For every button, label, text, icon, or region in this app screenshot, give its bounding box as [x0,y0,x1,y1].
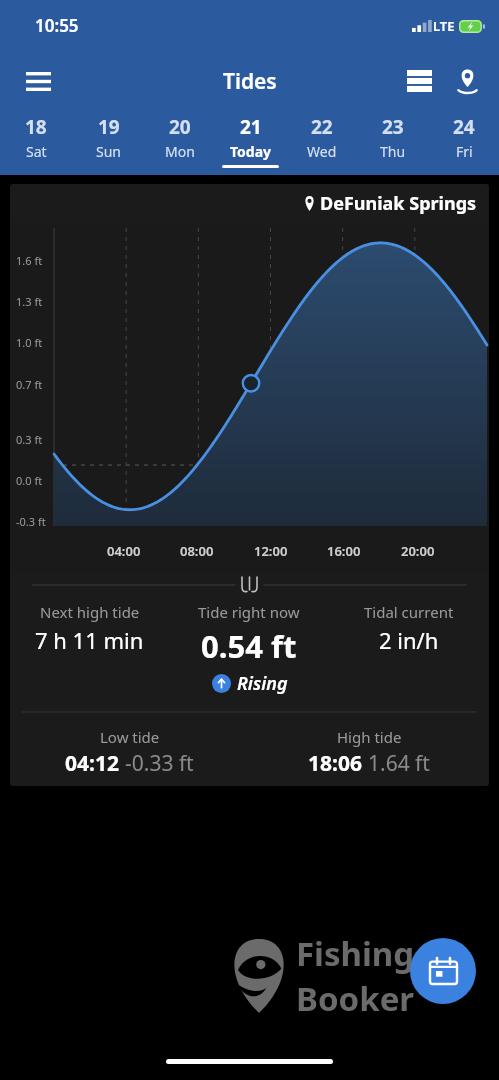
staticText: 16:00 [327,542,361,560]
staticText: 0.0 ft [16,473,43,488]
staticText: 23 [382,114,404,140]
staticText: Mon [165,142,195,161]
staticText: 18 [25,114,47,140]
staticText: 20 [169,114,191,140]
button[interactable]: 19 [72,110,144,170]
staticText: 20:00 [401,542,435,560]
staticText: Booker [296,976,415,1021]
button[interactable]: 21 [215,110,286,170]
button[interactable]: 18 [0,110,72,170]
staticText: Today [230,142,272,161]
staticText: 19 [98,114,120,140]
staticText: 1.6 ft [16,253,43,268]
staticText: Fishing [296,931,415,976]
button[interactable]: 22 [286,110,357,170]
staticText: 0.7 ft [16,377,43,392]
button[interactable]: Table view [395,57,443,105]
staticText: -0.33 ft [125,749,194,778]
staticText: 2 in/h [379,625,439,655]
staticText: Sun [96,142,121,161]
staticText: Sat [26,142,47,161]
staticText: 10:55 [35,14,79,37]
staticText: Thu [380,142,406,161]
staticText: 21 [240,114,262,140]
button[interactable]: 24 [428,110,499,170]
staticText: 18:06 [308,749,362,778]
staticText: 1.3 ft [16,294,43,309]
staticText: High tide [337,727,402,747]
staticText: Tidal current [364,602,454,622]
staticText: 7 h 11 min [35,625,144,655]
staticText: -0.3 ft [16,514,46,529]
button[interactable]: Calendar [410,938,476,1004]
staticText: 04:12 [65,749,119,778]
staticText: Fri [456,142,473,161]
staticText: 22 [311,114,333,140]
button[interactable]: 23 [357,110,428,170]
staticText: Rising [237,671,288,696]
staticText: 0.3 ft [16,432,43,447]
button[interactable]: Location [443,57,491,105]
staticText: 1.0 ft [16,335,43,350]
button[interactable]: Menu [14,57,62,105]
staticText: Next high tide [40,602,140,622]
staticText: 08:00 [180,542,214,560]
staticText: 1.64 ft [368,749,430,778]
staticText: 04:00 [107,542,141,560]
staticText: 12:00 [254,542,288,560]
staticText: DeFuniak Springs [320,191,477,216]
staticText: Tides [223,67,277,96]
staticText: 24 [453,114,475,140]
staticText: 0.54 ft [201,625,297,667]
staticText: Wed [307,142,337,161]
button[interactable]: 20 [144,110,215,170]
staticText: LTE [433,17,455,35]
staticText: Tide right now [198,602,300,622]
staticText: Low tide [100,727,160,747]
